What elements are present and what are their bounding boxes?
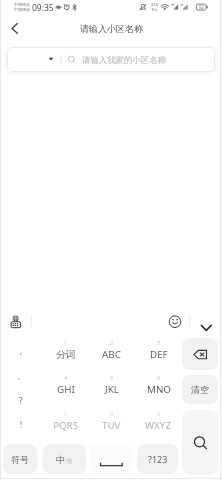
staticText: DEF bbox=[150, 348, 168, 361]
staticText: GHI bbox=[57, 383, 75, 396]
staticText: 请输入小区名称 bbox=[80, 23, 143, 34]
button[interactable]: Back bbox=[4, 18, 25, 39]
staticText: PQRS bbox=[53, 419, 79, 432]
staticText: 中 bbox=[56, 454, 65, 465]
button[interactable] bbox=[182, 410, 218, 475]
button[interactable]: 8 bbox=[88, 409, 135, 440]
button[interactable]: 请输入我家的小区名称 bbox=[7, 47, 215, 72]
staticText: 符号 bbox=[11, 454, 29, 465]
staticText: JKL bbox=[105, 383, 119, 396]
button[interactable] bbox=[182, 338, 218, 370]
staticText: /英 bbox=[65, 457, 73, 465]
staticText: 请输入我家的小区名称 bbox=[82, 55, 166, 66]
button[interactable]: Hide keyboard bbox=[196, 311, 218, 333]
staticText: 92 bbox=[199, 4, 205, 10]
button[interactable]: 符号 bbox=[3, 444, 37, 474]
button[interactable]: ! bbox=[4, 412, 38, 436]
button[interactable]: 清空 bbox=[182, 375, 218, 404]
staticText: 7 bbox=[64, 410, 68, 417]
staticText: 1 bbox=[64, 339, 68, 346]
staticText: 226 K/s bbox=[151, 2, 158, 12]
staticText: 6 bbox=[157, 374, 161, 381]
staticText: 中国移动 bbox=[14, 7, 30, 12]
button[interactable]: 7 bbox=[42, 409, 89, 440]
button[interactable]: Switch input method bbox=[5, 314, 27, 336]
button[interactable] bbox=[90, 444, 133, 474]
staticText: 5 bbox=[110, 374, 114, 381]
staticText: 中国移动 bbox=[14, 2, 30, 7]
staticText: ? bbox=[19, 395, 23, 406]
staticText: 09:35 bbox=[32, 2, 54, 14]
button[interactable]: 中 bbox=[43, 444, 86, 474]
staticText: 2 bbox=[110, 339, 114, 346]
button[interactable]: 4 bbox=[42, 373, 89, 404]
staticText: 分词 bbox=[56, 349, 76, 361]
staticText: WXYZ bbox=[145, 419, 172, 432]
staticText: ! bbox=[20, 419, 23, 430]
staticText: 9 bbox=[157, 410, 161, 417]
staticText: , bbox=[20, 345, 23, 356]
button[interactable]: ?123 bbox=[137, 444, 178, 474]
button[interactable]: 6 bbox=[135, 373, 182, 404]
button[interactable]: Emoji bbox=[164, 311, 186, 333]
staticText: TUV bbox=[102, 419, 121, 432]
staticText: 4 bbox=[64, 374, 68, 381]
button[interactable]: , bbox=[4, 338, 38, 362]
button[interactable]: 5 bbox=[88, 373, 135, 404]
staticText: 8 bbox=[110, 410, 114, 417]
staticText: 清空 bbox=[191, 384, 209, 395]
staticText: 3 bbox=[157, 339, 161, 346]
staticText: ?123 bbox=[148, 453, 168, 465]
staticText: 。 bbox=[17, 371, 25, 381]
button[interactable]: ? bbox=[4, 388, 38, 412]
staticText: ABC bbox=[102, 348, 121, 361]
button[interactable]: 9 bbox=[135, 409, 182, 440]
staticText: MNO bbox=[147, 383, 171, 396]
button[interactable]: 3 bbox=[135, 338, 182, 369]
button[interactable]: 1 bbox=[42, 338, 89, 369]
button[interactable]: 2 bbox=[88, 338, 135, 369]
